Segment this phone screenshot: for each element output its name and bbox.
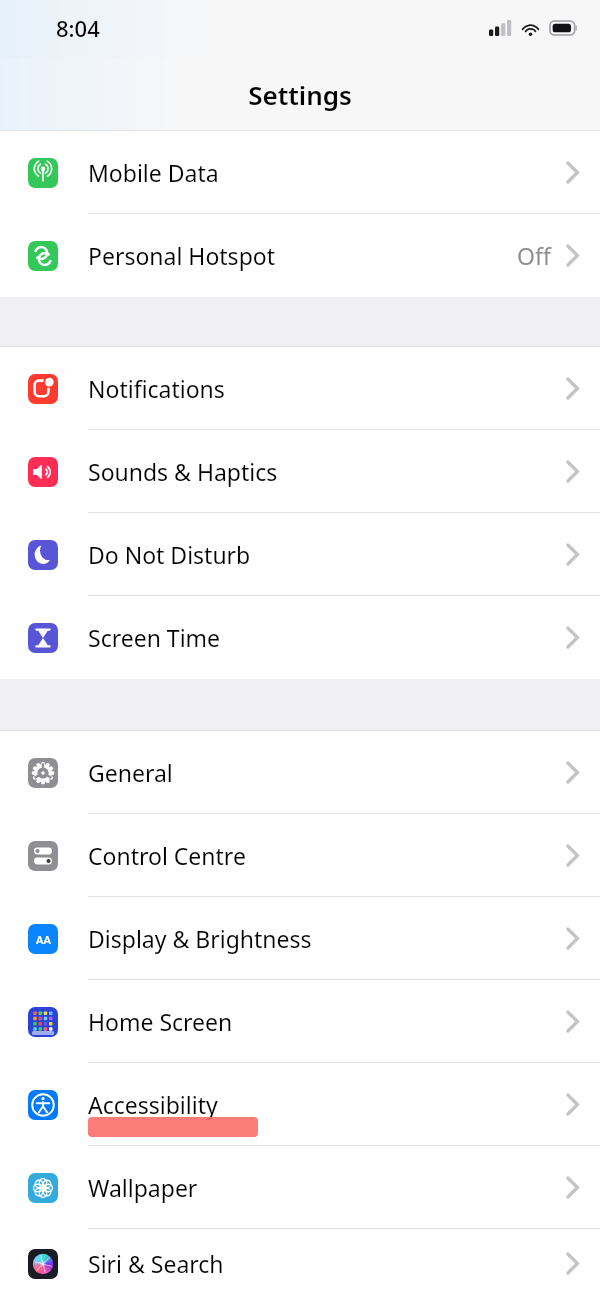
staticText: Home Screen: [88, 1006, 233, 1037]
button[interactable]: Home Screen: [0, 980, 600, 1063]
button[interactable]: AA: [0, 897, 600, 980]
staticText: Control Centre: [88, 840, 246, 871]
button[interactable]: Screen Time: [0, 596, 600, 679]
staticText: Sounds & Haptics: [88, 456, 278, 487]
staticText: General: [88, 757, 173, 788]
staticText: AA: [36, 932, 51, 947]
staticText: Off: [517, 240, 551, 271]
button[interactable]: Personal Hotspot: [0, 214, 600, 297]
staticText: Settings: [248, 77, 352, 112]
staticText: Screen Time: [88, 622, 221, 653]
button[interactable]: General: [0, 731, 600, 814]
staticText: Do Not Disturb: [88, 539, 251, 570]
staticText: Wallpaper: [88, 1172, 198, 1203]
button[interactable]: Wallpaper: [0, 1146, 600, 1229]
staticText: 8:04: [56, 13, 100, 43]
button[interactable]: Do Not Disturb: [0, 513, 600, 596]
staticText: Accessibility: [88, 1089, 218, 1120]
staticText: Mobile Data: [88, 157, 219, 188]
staticText: Notifications: [88, 373, 225, 404]
button[interactable]: Accessibility: [0, 1063, 600, 1146]
button[interactable]: Mobile Data: [0, 131, 600, 214]
staticText: Personal Hotspot: [88, 240, 275, 271]
button[interactable]: Sounds & Haptics: [0, 430, 600, 513]
staticText: Display & Brightness: [88, 923, 312, 954]
button[interactable]: Notifications: [0, 347, 600, 430]
button[interactable]: Siri & Search: [0, 1229, 600, 1298]
staticText: Siri & Search: [88, 1248, 224, 1279]
button[interactable]: Control Centre: [0, 814, 600, 897]
